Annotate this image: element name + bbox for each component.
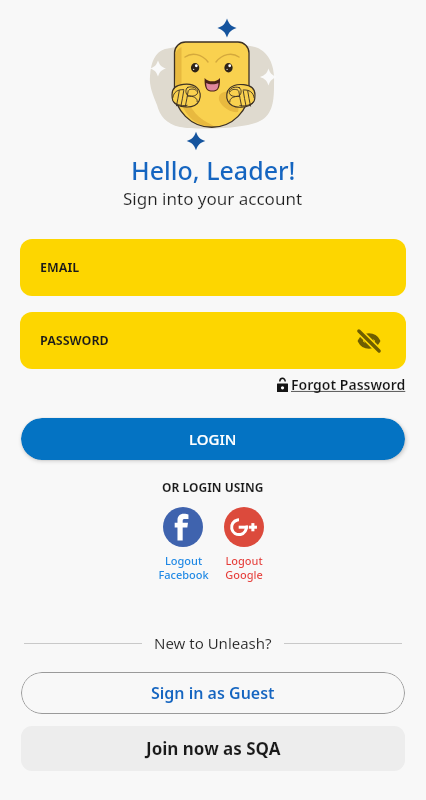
staticText: Sign into your account	[123, 187, 303, 210]
button[interactable]: Join now as SQA	[21, 726, 405, 771]
staticText: EMAIL	[40, 259, 80, 276]
staticText: PASSWORD	[40, 332, 109, 349]
button[interactable]: EMAIL	[20, 239, 406, 296]
staticText: Logout Google	[225, 553, 263, 582]
staticText: Join now as SQA	[146, 737, 281, 760]
button[interactable]: PASSWORD	[20, 312, 406, 369]
button[interactable]: Sign in as Guest	[21, 672, 405, 714]
staticText: Sign in as Guest	[151, 682, 275, 704]
staticText: Logout Facebook	[158, 553, 209, 582]
button[interactable]: Forgot Password	[277, 375, 409, 394]
staticText: LOGIN	[189, 429, 237, 449]
button[interactable]: Show password	[354, 326, 384, 356]
button[interactable]: LOGIN	[21, 418, 405, 460]
staticText: Hello, Leader!	[131, 153, 296, 187]
staticText: New to Unleash?	[154, 633, 272, 653]
button[interactable]: Logout Google	[214, 507, 274, 582]
staticText: Forgot Password	[291, 375, 409, 394]
button[interactable]: Logout Facebook	[153, 507, 213, 582]
staticText: OR LOGIN USING	[162, 479, 264, 495]
